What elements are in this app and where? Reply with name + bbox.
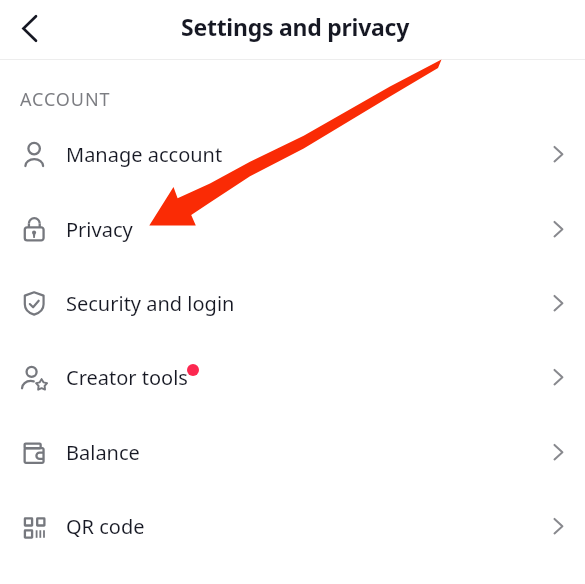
staticText: Security and login bbox=[66, 290, 235, 317]
staticText: Manage account bbox=[66, 141, 223, 168]
staticText: Creator tools bbox=[66, 364, 188, 391]
button[interactable]: Privacy bbox=[0, 192, 585, 266]
staticText: Settings and privacy bbox=[181, 11, 410, 42]
staticText: ACCOUNT bbox=[20, 87, 111, 112]
staticText: QR code bbox=[66, 513, 145, 540]
button[interactable]: Manage account bbox=[0, 117, 585, 191]
button[interactable]: Back bbox=[6, 0, 53, 56]
button[interactable]: QR code bbox=[0, 489, 585, 563]
staticText: Privacy bbox=[66, 216, 133, 243]
button[interactable]: Balance bbox=[0, 415, 585, 489]
staticText: Balance bbox=[66, 439, 140, 466]
button[interactable]: Security and login bbox=[0, 266, 585, 340]
button[interactable]: Creator tools bbox=[0, 340, 585, 414]
